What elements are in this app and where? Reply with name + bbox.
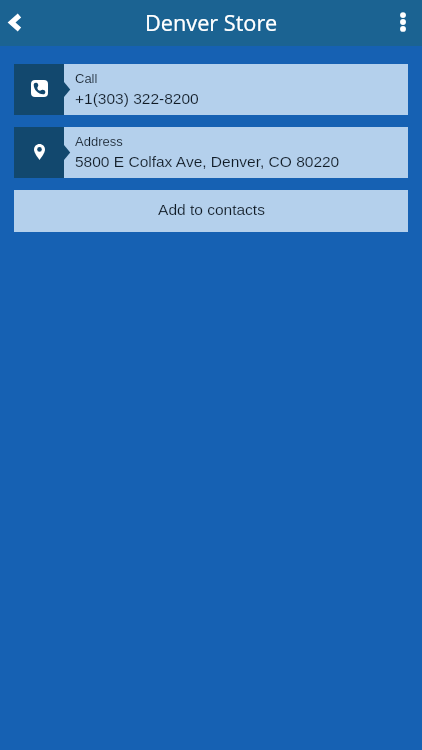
- button[interactable]: Back: [0, 0, 44, 46]
- staticText: +1(303) 322-8200: [75, 90, 199, 107]
- staticText: Call: [75, 71, 98, 86]
- staticText: 5800 E Colfax Ave, Denver, CO 80220: [75, 153, 340, 170]
- button[interactable]: Call: [14, 64, 408, 115]
- staticText: Address: [75, 134, 123, 149]
- staticText: Denver Store: [145, 8, 278, 38]
- button[interactable]: Address: [14, 127, 408, 178]
- staticText: Add to contacts: [158, 201, 265, 218]
- button[interactable]: Add to contacts: [14, 190, 408, 232]
- button[interactable]: More options: [378, 0, 422, 46]
